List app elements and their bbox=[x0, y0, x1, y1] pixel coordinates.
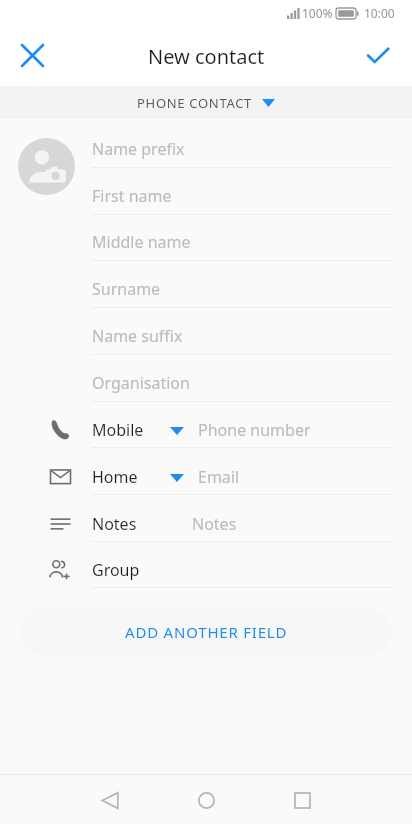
staticText: Group bbox=[92, 559, 140, 581]
staticText: ADD ANOTHER FIELD bbox=[125, 622, 288, 642]
button[interactable]: Organisation bbox=[92, 361, 394, 408]
button[interactable]: First name bbox=[92, 174, 394, 221]
button[interactable]: ADD ANOTHER FIELD bbox=[20, 608, 392, 655]
staticText: Email bbox=[198, 466, 240, 488]
button[interactable]: Group bbox=[0, 547, 412, 594]
button[interactable]: PHONE CONTACT bbox=[0, 86, 412, 119]
staticText: Name prefix bbox=[92, 138, 185, 160]
button[interactable]: Save bbox=[354, 31, 402, 79]
button[interactable]: Phone bbox=[0, 407, 412, 454]
staticText: Middle name bbox=[92, 231, 191, 253]
other: Phone bbox=[48, 419, 73, 441]
staticText: Organisation bbox=[92, 372, 190, 394]
staticText: PHONE CONTACT bbox=[137, 94, 253, 112]
staticText: Name suffix bbox=[92, 325, 183, 347]
button[interactable]: Surname bbox=[92, 267, 394, 314]
staticText: Surname bbox=[92, 278, 161, 300]
button[interactable]: Email bbox=[0, 454, 412, 501]
button[interactable]: Middle name bbox=[92, 220, 394, 267]
staticText: Mobile bbox=[92, 419, 144, 441]
button[interactable]: Cancel bbox=[8, 31, 56, 79]
staticText: Phone number bbox=[198, 419, 311, 441]
other: Notes bbox=[48, 513, 73, 535]
button[interactable]: Add contact photo bbox=[18, 138, 75, 195]
other: Email bbox=[48, 466, 73, 488]
staticText: Home bbox=[92, 466, 138, 488]
button[interactable]: Home bbox=[183, 777, 229, 823]
staticText: Notes bbox=[92, 513, 137, 535]
button[interactable]: Name suffix bbox=[92, 314, 394, 361]
staticText: First name bbox=[92, 185, 172, 207]
button[interactable]: Recent apps bbox=[279, 777, 325, 823]
staticText: New contact bbox=[148, 43, 265, 70]
button[interactable]: Notes bbox=[0, 501, 412, 548]
staticText: Notes bbox=[192, 513, 237, 535]
staticText: 10:00 bbox=[364, 5, 395, 21]
other: Group bbox=[48, 559, 73, 581]
button[interactable]: Name prefix bbox=[92, 127, 394, 174]
staticText: 100% bbox=[302, 5, 333, 21]
button[interactable]: Back bbox=[87, 777, 133, 823]
